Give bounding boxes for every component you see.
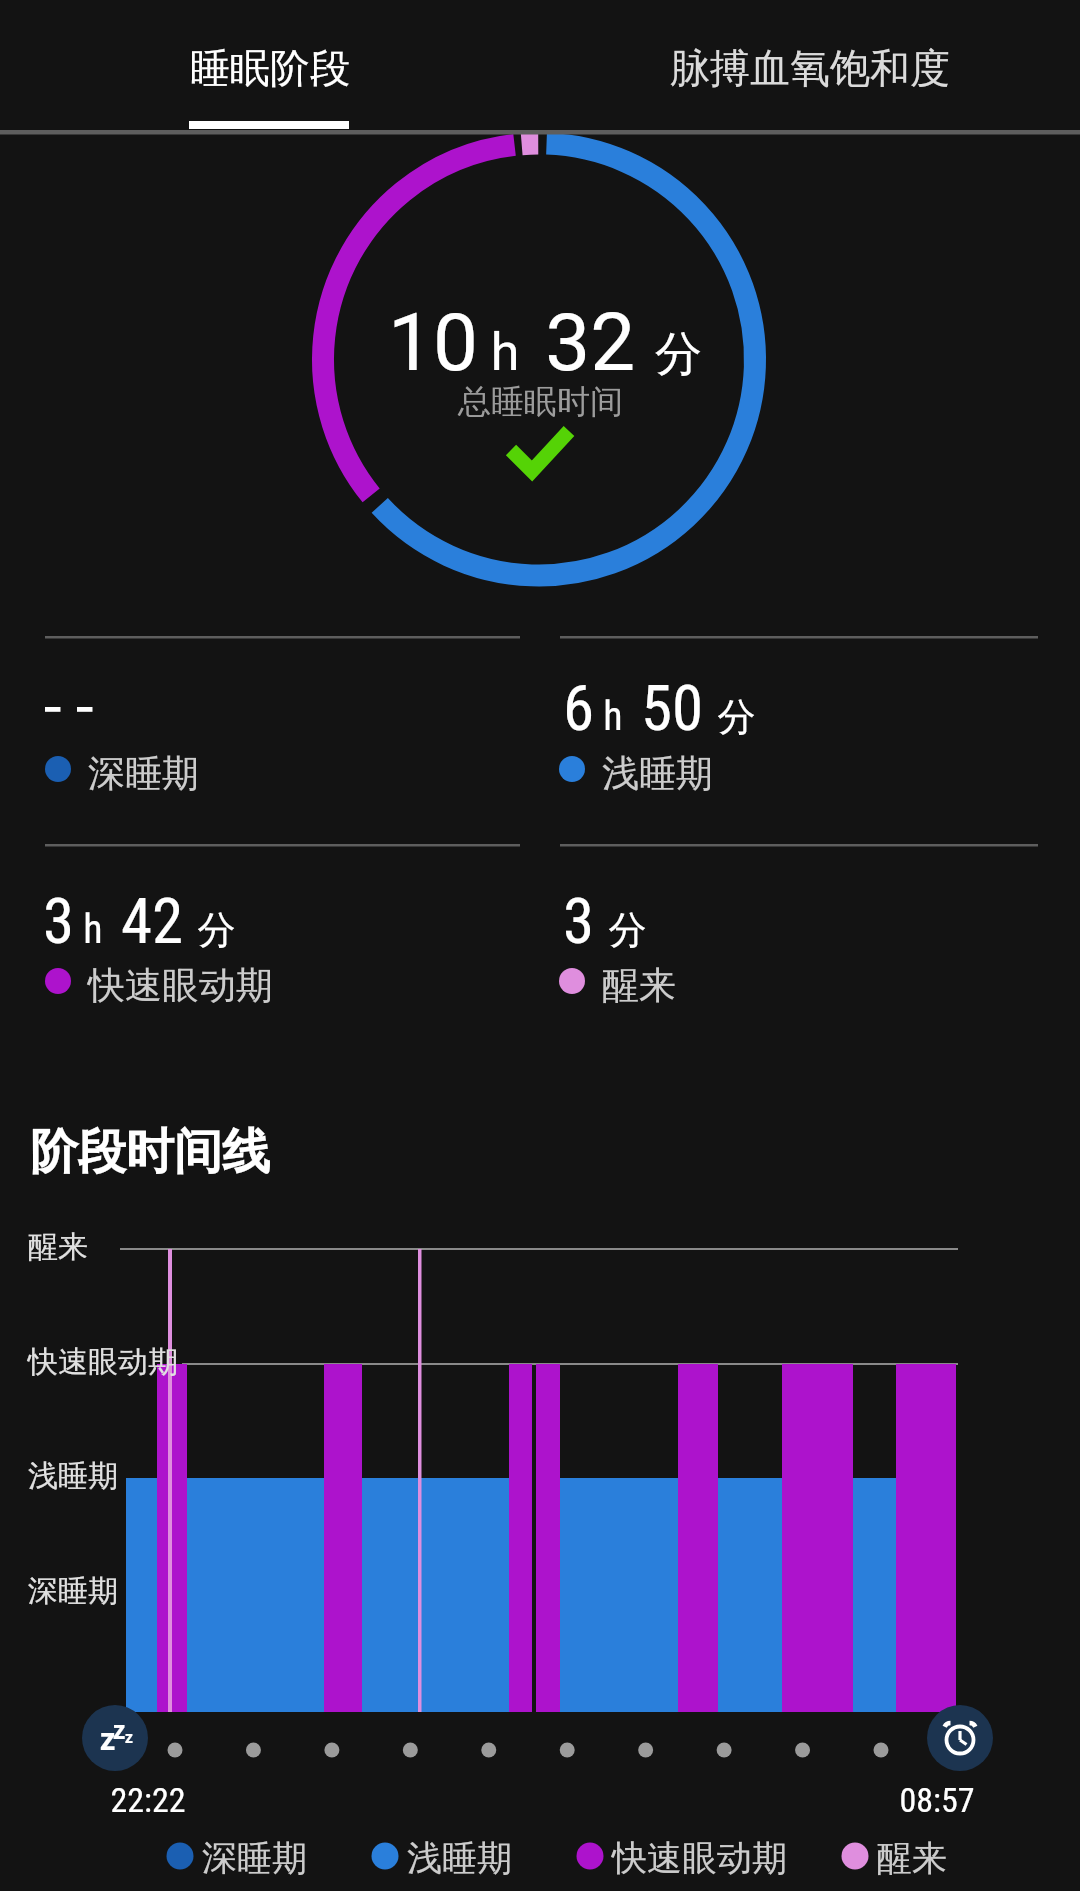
- staticText: 睡眠阶段: [190, 43, 350, 93]
- staticText: 总睡眠时间: [458, 381, 623, 423]
- staticText: 醒来: [877, 1836, 947, 1880]
- staticText: 3 h 42 分: [43, 885, 236, 959]
- staticText: z: [113, 1712, 126, 1746]
- staticText: 阶段时间线: [30, 1122, 270, 1182]
- staticText: 深睡期: [28, 1572, 118, 1610]
- button[interactable]: 脉搏血氧饱和度: [640, 18, 980, 118]
- staticText: 6 h 50 分: [563, 672, 756, 746]
- staticText: 浅睡期: [28, 1457, 118, 1495]
- button[interactable]: 睡眠阶段: [160, 18, 380, 118]
- staticText: 醒来: [28, 1228, 88, 1266]
- staticText: 快速眼动期: [28, 1343, 178, 1381]
- staticText: 3 分: [563, 885, 647, 959]
- staticText: 深睡期: [88, 750, 199, 797]
- staticText: 脉搏血氧饱和度: [670, 43, 950, 93]
- staticText: 22:22: [110, 1780, 186, 1820]
- staticText: 浅睡期: [602, 750, 713, 797]
- staticText: 08:57: [899, 1780, 975, 1820]
- staticText: 深睡期: [202, 1836, 307, 1880]
- staticText: 10 h 32 分: [388, 296, 703, 390]
- staticText: 浅睡期: [407, 1836, 512, 1880]
- staticText: 醒来: [602, 962, 676, 1009]
- staticText: z: [100, 1717, 116, 1759]
- staticText: 快速眼动期: [88, 962, 273, 1009]
- staticText: z: [125, 1726, 133, 1748]
- staticText: 快速眼动期: [612, 1836, 787, 1880]
